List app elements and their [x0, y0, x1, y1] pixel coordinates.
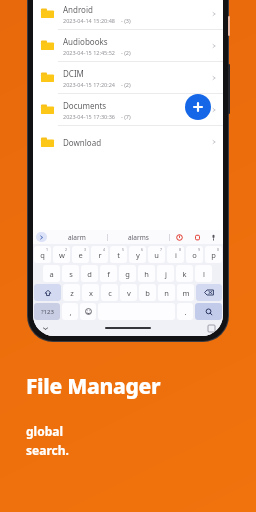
staticText: 2023-04-15 12:45:52	[63, 49, 115, 56]
staticText: o	[192, 250, 197, 260]
button[interactable]: t	[110, 246, 127, 263]
button[interactable]: i	[167, 246, 184, 263]
button[interactable]: Android	[33, 0, 223, 30]
staticText: - (2)	[121, 81, 131, 88]
button[interactable]: b	[139, 284, 156, 301]
staticText: b	[145, 288, 150, 298]
button[interactable]: Clock	[170, 230, 188, 244]
staticText: .	[184, 307, 187, 317]
button[interactable]: ?123	[34, 303, 60, 320]
button[interactable]: d	[81, 265, 98, 282]
button[interactable]: o	[186, 246, 203, 263]
button[interactable]: ,	[62, 303, 78, 320]
button[interactable]: p	[205, 246, 222, 263]
staticText: r	[98, 250, 102, 260]
staticText: Audiobooks	[63, 36, 108, 47]
staticText: search.	[26, 442, 69, 458]
staticText: g	[125, 269, 130, 279]
button[interactable]: y	[129, 246, 146, 263]
staticText: f	[107, 269, 110, 279]
staticText: e	[78, 250, 83, 260]
button[interactable]: Alert	[188, 230, 206, 244]
staticText: z	[70, 288, 74, 298]
staticText: 4	[103, 247, 106, 252]
staticText: 8	[179, 247, 182, 252]
staticText: v	[127, 288, 131, 298]
staticText: 9	[198, 247, 201, 252]
staticText: m	[182, 288, 190, 298]
button[interactable]: l	[195, 265, 212, 282]
button[interactable]: Expand toolbar	[36, 232, 47, 242]
button[interactable]: Audiobooks	[33, 30, 223, 62]
button[interactable]: g	[119, 265, 136, 282]
staticText: t	[117, 250, 120, 260]
button[interactable]: Add	[185, 94, 211, 120]
staticText: ?123	[41, 308, 54, 316]
button[interactable]: c	[101, 284, 118, 301]
button[interactable]: m	[177, 284, 194, 301]
button[interactable]: w	[53, 246, 70, 263]
button[interactable]: q	[34, 246, 51, 263]
button[interactable]: Emoji	[80, 303, 96, 320]
button[interactable]: Backspace	[196, 284, 222, 301]
staticText: n	[164, 288, 169, 298]
button[interactable]: z	[63, 284, 80, 301]
staticText: i	[175, 250, 177, 260]
button[interactable]: Voice input	[206, 230, 220, 244]
other: Switch keyboard	[208, 325, 215, 332]
button[interactable]: s	[62, 265, 79, 282]
staticText: 1	[46, 247, 49, 252]
staticText: j	[165, 269, 167, 279]
button[interactable]: .	[177, 303, 193, 320]
staticText: 2	[65, 247, 68, 252]
staticText: DCIM	[63, 68, 84, 79]
button[interactable]: x	[82, 284, 99, 301]
button[interactable]: j	[157, 265, 174, 282]
staticText: 0	[217, 247, 220, 252]
button[interactable]: u	[148, 246, 165, 263]
button[interactable]: alarms	[128, 233, 149, 242]
button[interactable]: v	[120, 284, 137, 301]
button[interactable]: f	[100, 265, 117, 282]
button[interactable]: e	[72, 246, 89, 263]
staticText: Download	[63, 137, 102, 148]
staticText: c	[108, 288, 112, 298]
button[interactable]: DCIM	[33, 62, 223, 94]
button[interactable]: Shift	[34, 284, 61, 301]
button[interactable]: h	[138, 265, 155, 282]
other: Hide keyboard	[42, 325, 49, 332]
staticText: d	[87, 269, 92, 279]
staticText: s	[69, 269, 73, 279]
staticText: ,	[69, 307, 72, 317]
staticText: 5	[122, 247, 125, 252]
button[interactable]: r	[91, 246, 108, 263]
staticText: p	[211, 250, 216, 260]
button[interactable]: n	[158, 284, 175, 301]
staticText: 6	[141, 247, 144, 252]
button[interactable]: k	[176, 265, 193, 282]
staticText: h	[144, 269, 149, 279]
staticText: l	[203, 269, 205, 279]
button[interactable]: Search	[195, 303, 222, 320]
staticText: w	[59, 250, 65, 260]
staticText: 3	[84, 247, 87, 252]
staticText: 7	[160, 247, 163, 252]
staticText: Documents	[63, 100, 107, 111]
staticText: q	[40, 250, 45, 260]
staticText: x	[89, 288, 93, 298]
staticText: y	[136, 250, 140, 260]
staticText: u	[154, 250, 159, 260]
staticText: - (7)	[121, 113, 131, 120]
button[interactable]: Download	[33, 126, 223, 158]
staticText: a	[49, 269, 54, 279]
staticText: k	[182, 269, 187, 279]
button[interactable]: a	[43, 265, 60, 282]
button[interactable]: alarm	[68, 233, 86, 242]
staticText: Android	[63, 4, 93, 15]
staticText: 2023-04-15 17:20:24	[63, 81, 115, 88]
button[interactable]: Documents	[33, 94, 223, 126]
staticText: 2023-04-15 17:30:36	[63, 113, 115, 120]
staticText: - (2)	[121, 49, 131, 56]
staticText: - (3)	[121, 17, 131, 24]
